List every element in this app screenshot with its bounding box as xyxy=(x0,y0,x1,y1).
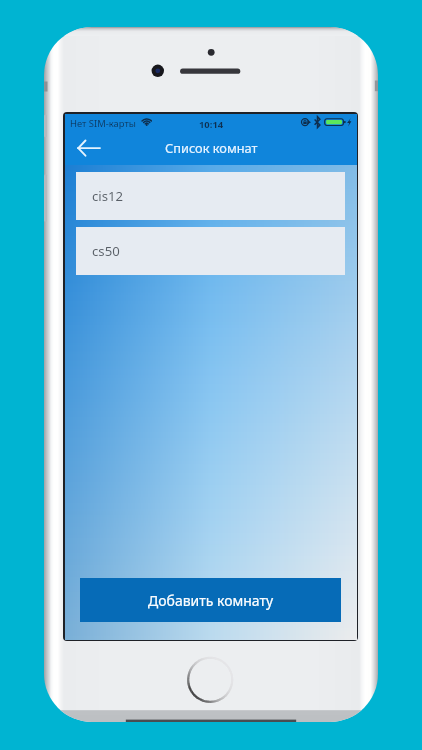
button[interactable]: cis12 xyxy=(76,172,345,220)
staticText: 10:14 xyxy=(199,118,224,131)
staticText: Нет SIM-карты xyxy=(70,117,136,130)
button[interactable]: Назад xyxy=(71,135,103,165)
staticText: Добавить комнату xyxy=(148,591,274,610)
staticText: Список комнат xyxy=(165,139,258,156)
button[interactable]: cs50 xyxy=(76,227,345,275)
staticText: cs50 xyxy=(92,242,120,260)
staticText: cis12 xyxy=(92,187,124,205)
button[interactable]: Добавить комнату xyxy=(80,578,341,622)
